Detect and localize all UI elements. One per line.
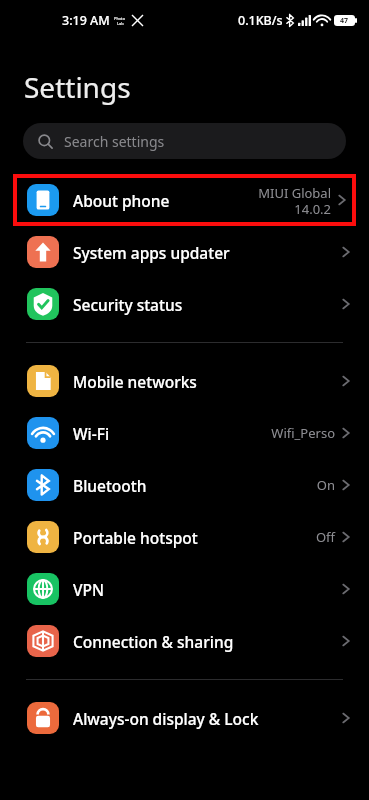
button[interactable]: Bluetooth xyxy=(0,459,369,511)
staticText: Always-on display & Lock xyxy=(73,708,259,729)
button[interactable]: About phone xyxy=(17,178,352,222)
staticText: Wi-Fi xyxy=(73,423,110,444)
staticText: Mobile networks xyxy=(73,371,197,392)
staticText: 3:19 AM xyxy=(62,12,110,29)
button[interactable]: VPN xyxy=(0,563,369,615)
staticText: About phone xyxy=(73,190,170,211)
button[interactable]: System apps updater xyxy=(0,226,369,278)
button[interactable]: Security status xyxy=(0,278,369,330)
staticText: On xyxy=(316,476,335,494)
staticText: Wifi_Perso xyxy=(271,424,335,442)
button[interactable]: Always-on display & Lock xyxy=(0,692,369,744)
staticText: Lab xyxy=(117,21,124,26)
button[interactable]: Portable hotspot xyxy=(0,511,369,563)
staticText: System apps updater xyxy=(73,242,230,263)
staticText: Search settings xyxy=(64,132,165,151)
staticText: Bluetooth xyxy=(73,475,147,496)
staticText: 47 xyxy=(340,16,349,26)
staticText: Portable hotspot xyxy=(73,527,198,548)
staticText: Connection & sharing xyxy=(73,631,234,652)
staticText: Off xyxy=(315,528,335,546)
staticText: Security status xyxy=(73,294,183,315)
button[interactable]: Wi-Fi xyxy=(0,407,369,459)
button[interactable]: Search settings xyxy=(23,123,346,159)
staticText: VPN xyxy=(73,579,105,600)
staticText: Photo xyxy=(114,16,126,21)
staticText: MIUI Global 14.0.2 xyxy=(258,184,331,217)
staticText: 0.1KB/s xyxy=(238,12,283,29)
button[interactable]: Mobile networks xyxy=(0,355,369,407)
staticText: Settings xyxy=(24,68,131,106)
button[interactable]: Connection & sharing xyxy=(0,615,369,667)
